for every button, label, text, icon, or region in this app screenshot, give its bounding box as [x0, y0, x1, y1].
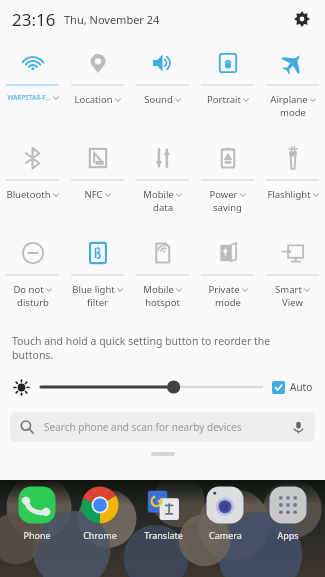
button[interactable]: Auto	[272, 380, 313, 394]
staticText: Mobile	[143, 188, 174, 201]
button[interactable]: Bluetooth	[0, 133, 65, 228]
staticText: 23:16	[12, 8, 56, 31]
staticText: Chrome	[83, 529, 117, 541]
button[interactable]: Private	[195, 228, 260, 328]
button[interactable]: Do not	[0, 228, 65, 328]
staticText: hotspot	[145, 296, 180, 309]
button[interactable]: Camera	[195, 484, 255, 541]
button[interactable]: Power	[195, 133, 260, 228]
staticText: Airplane	[270, 93, 308, 106]
staticText: Private	[208, 283, 240, 296]
button[interactable]: Search phone and scan for nearby devices	[10, 412, 315, 442]
staticText: Smart	[275, 283, 302, 296]
staticText: data	[153, 201, 173, 214]
staticText: Camera	[209, 529, 242, 541]
button[interactable]: Sound	[130, 38, 195, 133]
staticText: Touch and hold a quick setting button to…	[12, 334, 271, 362]
staticText: mode	[215, 296, 241, 309]
staticText: saving	[213, 201, 242, 214]
button[interactable]: Blue light	[65, 228, 130, 328]
other: Brightness	[14, 380, 29, 395]
staticText: Location	[74, 93, 113, 106]
staticText: Thu, November 24	[64, 12, 160, 27]
staticText: mode	[280, 106, 306, 119]
staticText: WARPSTAR-F...	[7, 93, 51, 102]
button[interactable]: Mobile	[130, 228, 195, 328]
button[interactable]: Location	[65, 38, 130, 133]
staticText: NFC	[84, 188, 103, 201]
staticText: Sound	[144, 93, 173, 106]
button[interactable]: NFC	[65, 133, 130, 228]
staticText: Search phone and scan for nearby devices	[44, 420, 242, 434]
other: Voice search	[292, 421, 305, 434]
button[interactable]: Brightness slider	[41, 377, 262, 397]
button[interactable]: Portrait	[195, 38, 260, 133]
staticText: Blue light	[72, 283, 115, 296]
staticText: Phone	[23, 529, 51, 541]
staticText: Power	[209, 188, 238, 201]
button[interactable]: Translate	[133, 484, 193, 541]
button[interactable]: WARPSTAR-F...	[0, 38, 65, 133]
staticText: filter	[87, 296, 108, 309]
staticText: Flashlight	[267, 188, 311, 201]
button[interactable]: Phone	[7, 484, 67, 541]
button[interactable]: Airplane	[260, 38, 325, 133]
staticText: disturb	[17, 296, 49, 309]
staticText: View	[282, 296, 303, 309]
button[interactable]: Apps	[258, 484, 318, 541]
button[interactable]: Flashlight	[260, 133, 325, 228]
staticText: Do not	[13, 283, 44, 296]
staticText: Translate	[144, 529, 183, 541]
staticText: Bluetooth	[6, 188, 51, 201]
button[interactable]: Mobile	[130, 133, 195, 228]
staticText: Auto	[290, 380, 313, 394]
staticText: Apps	[277, 529, 299, 541]
staticText: Portrait	[207, 93, 241, 106]
button[interactable]: Chrome	[70, 484, 130, 541]
button[interactable]: Settings	[289, 6, 315, 32]
button[interactable]: Smart	[260, 228, 325, 328]
staticText: Mobile	[143, 283, 174, 296]
